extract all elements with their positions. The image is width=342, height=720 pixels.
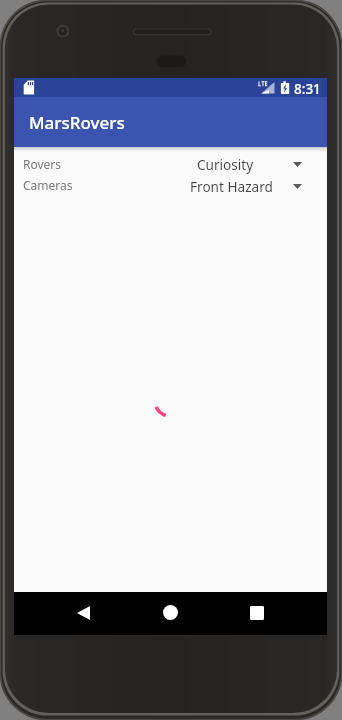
staticText: Cameras <box>23 177 73 193</box>
button[interactable]: Recent apps <box>236 591 278 634</box>
button[interactable]: Home <box>148 591 192 634</box>
staticText: Rovers <box>23 156 62 172</box>
button[interactable]: Back <box>62 591 104 634</box>
button[interactable]: Front Hazard <box>172 173 307 198</box>
staticText: 8:31 <box>294 80 321 98</box>
button[interactable]: Curiosity <box>172 151 307 176</box>
staticText: Curiosity <box>197 155 254 174</box>
staticText: MarsRovers <box>29 111 125 134</box>
staticText: Front Hazard <box>190 177 273 196</box>
